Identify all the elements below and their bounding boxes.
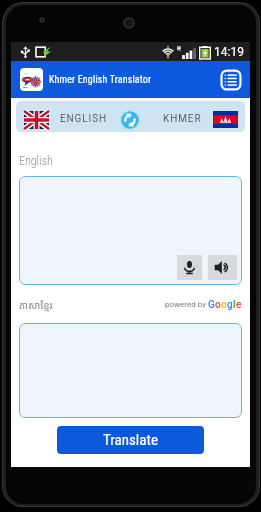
staticText: powered by [165, 300, 208, 309]
staticText: ENGLISH [60, 113, 108, 125]
staticText: o [215, 299, 221, 311]
button[interactable]: ENGLISH [16, 101, 119, 132]
staticText: g [227, 299, 233, 311]
staticText: 14:19 [214, 45, 244, 59]
button[interactable]: KHMER [141, 101, 245, 132]
staticText: English [19, 154, 53, 168]
button[interactable]: App icon [20, 68, 43, 91]
staticText: Khmer English Translator [49, 74, 152, 86]
staticText: Translate [103, 431, 158, 449]
staticText: l [233, 299, 236, 311]
button[interactable]: Menu [212, 61, 249, 98]
staticText: o [221, 299, 227, 311]
button[interactable]: Voice input [19, 176, 242, 285]
staticText: ភាសាខ្មែរ [19, 298, 53, 312]
button[interactable]: Translate [57, 426, 204, 454]
button[interactable] [19, 323, 242, 418]
button[interactable]: Voice input [177, 255, 202, 280]
button[interactable]: Speak [208, 255, 237, 280]
staticText: KHMER [163, 113, 202, 125]
button[interactable]: Swap languages [119, 109, 141, 131]
staticText: G [208, 299, 215, 311]
staticText: e [236, 299, 242, 311]
